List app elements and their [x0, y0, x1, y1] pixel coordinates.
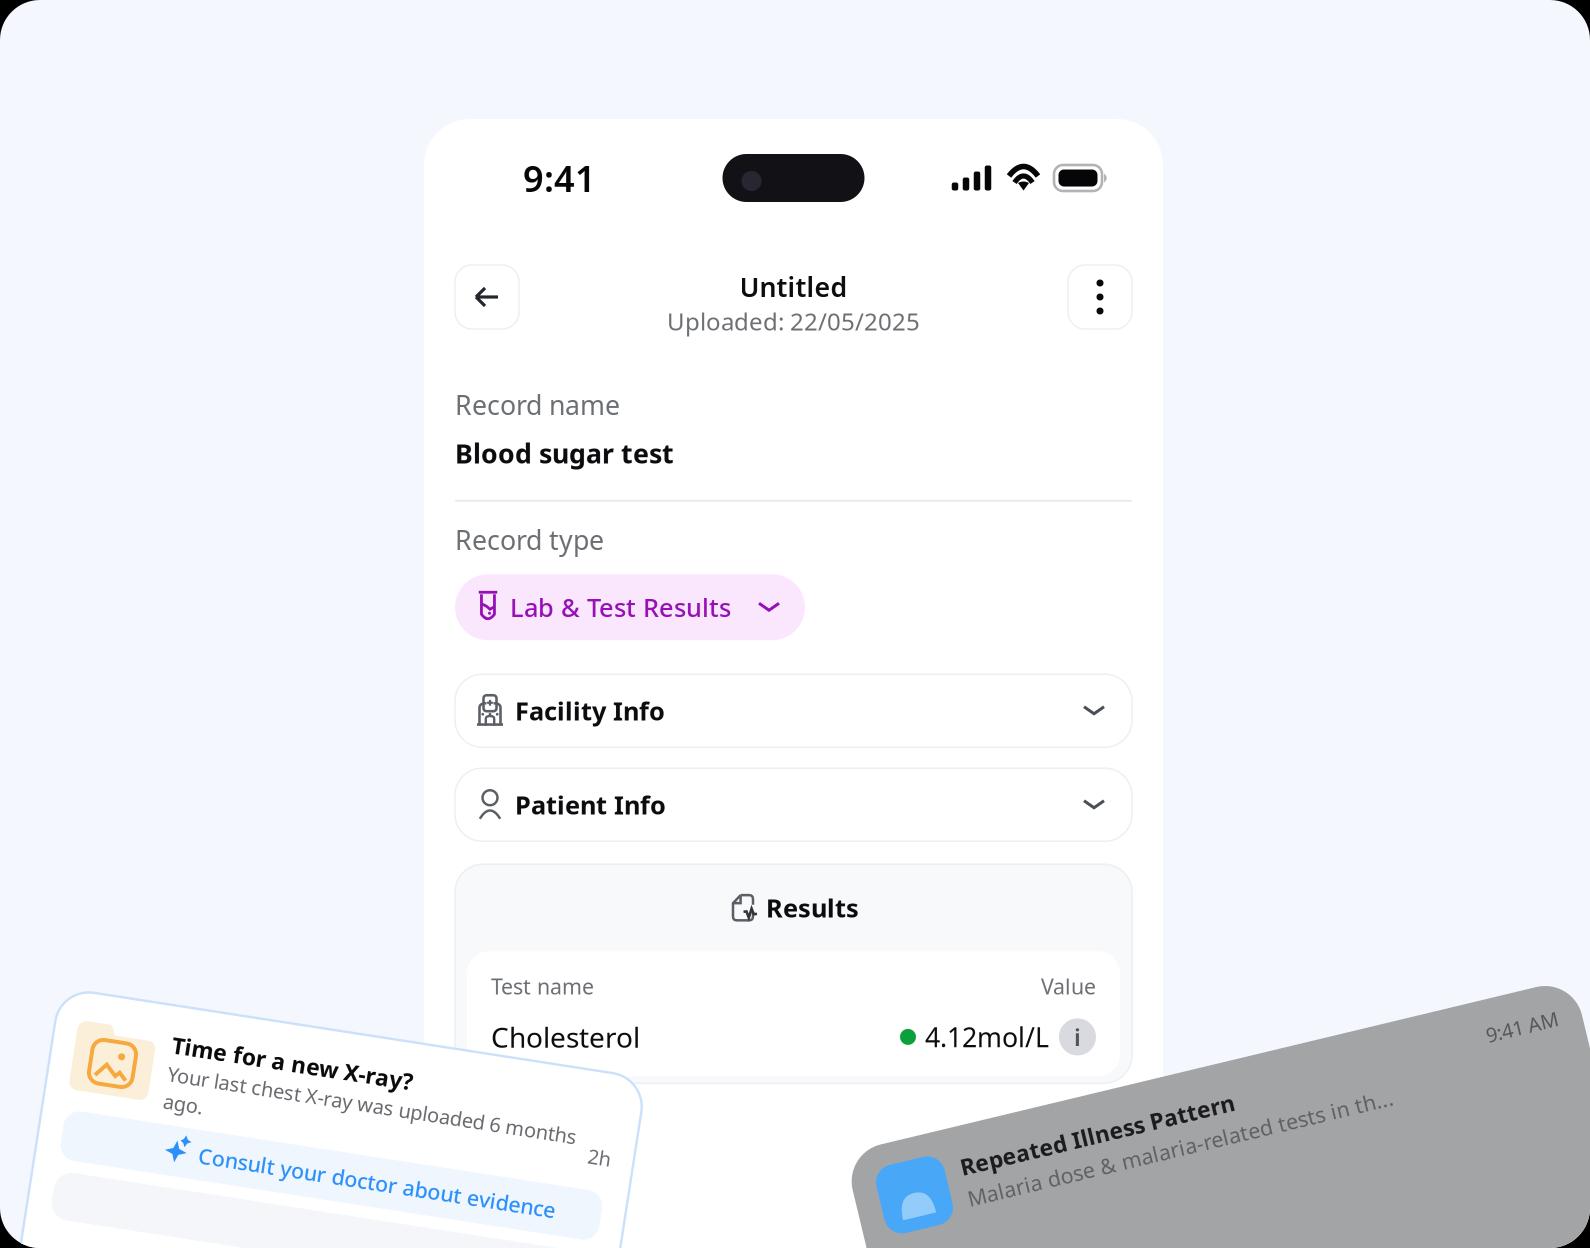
staticText: Cholesterol: [491, 1018, 640, 1055]
button[interactable]: Facility Info: [455, 674, 1132, 747]
staticText: Value: [1041, 972, 1096, 1000]
staticText: Malaria dose & malaria-related tests in …: [975, 1121, 1412, 1149]
staticText: Record name: [455, 387, 620, 422]
staticText: 9:41: [523, 154, 596, 202]
staticText: Facility Info: [515, 694, 665, 727]
button[interactable]: Lab & Test Results: [455, 574, 805, 640]
staticText: Record type: [455, 522, 604, 557]
staticText: Your last chest X-ray was uploaded 6 mon…: [150, 1086, 564, 1113]
staticText: Blood sugar test: [455, 435, 674, 471]
staticText: Untitled: [739, 269, 847, 304]
staticText: Consult your doctor about evidence: [193, 1161, 554, 1189]
staticText: Test name: [491, 972, 594, 1000]
button[interactable]: Patient Info: [455, 768, 1132, 841]
staticText: Patient Info: [515, 788, 666, 821]
staticText: ago.: [150, 1114, 190, 1140]
staticText: 4.12mol/L: [925, 1019, 1049, 1055]
staticText: Results: [766, 891, 859, 924]
button[interactable]: Back: [455, 265, 519, 329]
staticText: Lab & Test Results: [510, 590, 731, 624]
button[interactable]: More options: [1068, 265, 1132, 329]
staticText: Uploaded: 22/05/2025: [667, 305, 920, 337]
staticText: Time for a new X-ray?: [150, 1055, 394, 1085]
staticText: i: [1074, 1021, 1081, 1053]
staticText: Repeated Illness Pattern: [975, 1088, 1257, 1118]
